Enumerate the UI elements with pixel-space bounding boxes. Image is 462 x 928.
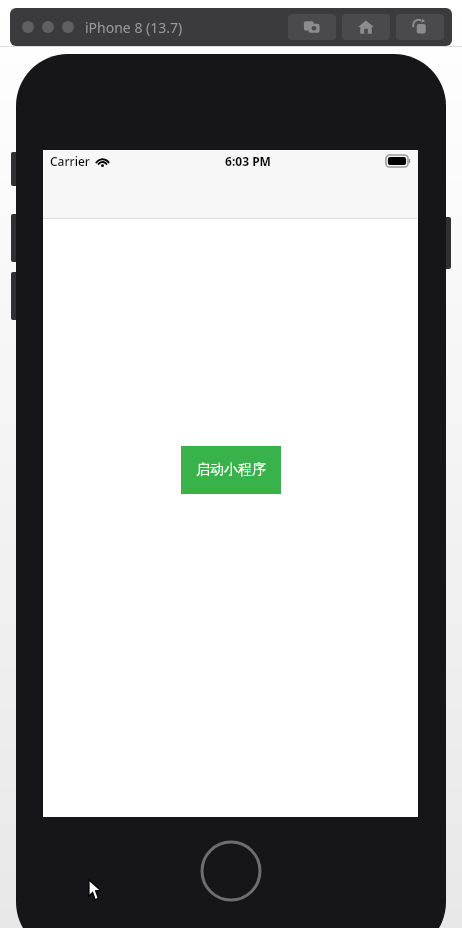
button[interactable]: Close	[22, 21, 34, 33]
button[interactable]: Screenshot	[288, 14, 336, 40]
staticText: 启动小程序	[196, 461, 266, 479]
button[interactable]: Zoom	[62, 21, 74, 33]
button[interactable]: Home	[342, 14, 390, 40]
button[interactable]: Rotate	[396, 14, 444, 40]
button[interactable]: 启动小程序	[181, 446, 281, 494]
staticText: iPhone 8 (13.7)	[85, 18, 183, 37]
staticText: 6:03 PM	[225, 153, 271, 169]
button[interactable]: Minimize	[42, 21, 54, 33]
button[interactable]: Home button	[200, 840, 262, 902]
staticText: Carrier	[50, 153, 90, 169]
